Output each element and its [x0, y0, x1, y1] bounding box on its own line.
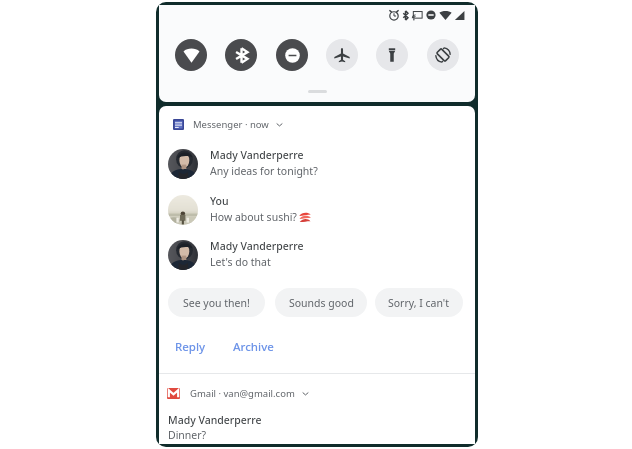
button[interactable]: Sorry, I can't: [375, 288, 463, 317]
staticText: See you then!: [183, 296, 250, 310]
staticText: Mady Vanderperre: [210, 239, 304, 253]
button[interactable]: Wi-Fi: [175, 39, 207, 71]
button[interactable]: Auto-rotate: [427, 39, 459, 71]
button[interactable]: Bluetooth: [225, 39, 257, 71]
button[interactable]: Flashlight: [376, 39, 408, 71]
staticText: Dinner?: [168, 428, 207, 442]
button[interactable]: You: [168, 195, 311, 225]
button[interactable]: See you then!: [168, 288, 265, 317]
button[interactable]: Mady Vanderperre: [168, 240, 304, 270]
button[interactable]: Do not disturb: [276, 39, 308, 71]
staticText: Messenger · now: [193, 118, 269, 131]
staticText: Archive: [233, 339, 274, 355]
staticText: How about sushi?: [210, 210, 297, 224]
button[interactable]: Archive: [233, 339, 274, 355]
staticText: Let's do that: [210, 255, 271, 269]
staticText: Sounds good: [289, 296, 354, 310]
button[interactable]: Messenger · now: [173, 118, 284, 131]
staticText: Sorry, I can't: [388, 296, 450, 310]
button[interactable]: Reply: [175, 339, 206, 355]
staticText: Mady Vanderperre: [168, 413, 262, 427]
button[interactable]: Gmail · van@gmail.com: [167, 387, 310, 400]
staticText: Reply: [175, 339, 206, 355]
button[interactable]: Mady Vanderperre: [168, 149, 318, 179]
button[interactable]: Airplane mode: [326, 39, 358, 71]
staticText: Mady Vanderperre: [210, 148, 304, 162]
staticText: Gmail · van@gmail.com: [190, 387, 295, 400]
staticText: You: [210, 194, 229, 208]
button[interactable]: Sounds good: [275, 288, 367, 317]
staticText: Any ideas for tonight?: [210, 164, 318, 178]
